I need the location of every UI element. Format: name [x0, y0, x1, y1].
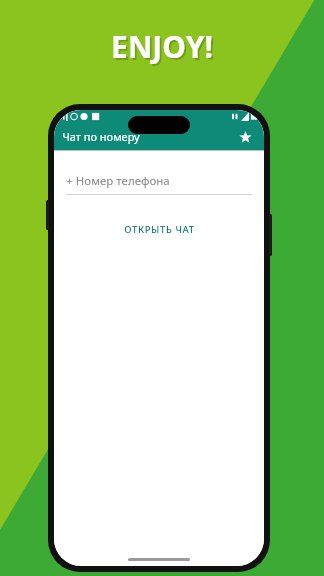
staticText: ENJOY! — [111, 26, 213, 67]
button[interactable]: + Номер телефона — [66, 173, 252, 195]
staticText: ОТКРЫТЬ ЧАТ — [124, 223, 195, 236]
button[interactable]: ОТКРЫТЬ ЧАТ — [112, 217, 207, 242]
staticText: Чат по номеру — [62, 129, 140, 144]
staticText: ENJOY! — [113, 28, 215, 69]
staticText: + Номер телефона — [66, 173, 170, 189]
button[interactable]: Favourite — [234, 126, 256, 148]
